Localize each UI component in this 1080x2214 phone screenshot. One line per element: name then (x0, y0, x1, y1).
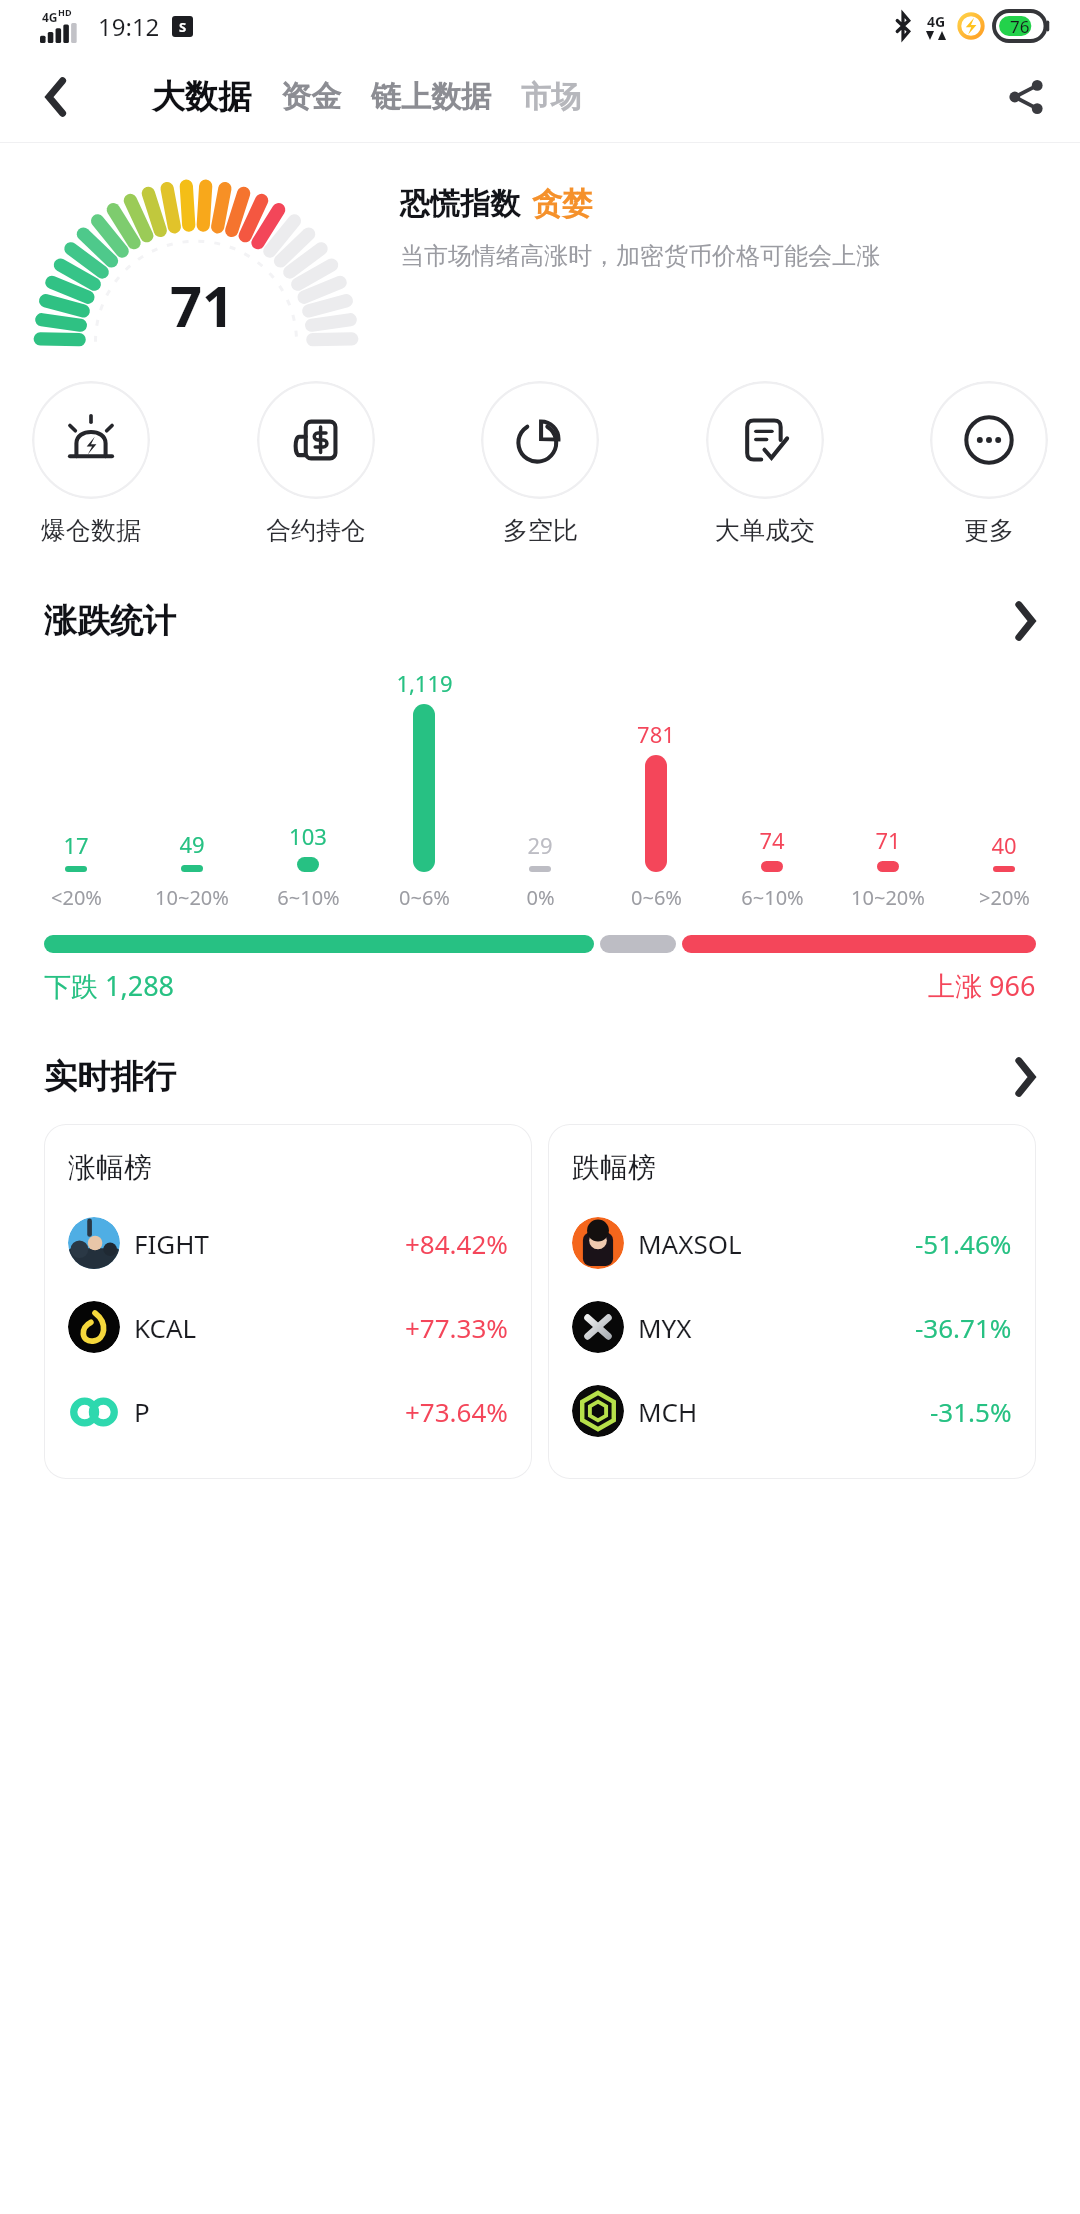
staticText: HD (58, 6, 72, 18)
button[interactable]: P (68, 1369, 508, 1453)
staticText: FIGHT (134, 1226, 209, 1261)
button[interactable]: 跌幅榜 (548, 1124, 1036, 1479)
staticText: 1,119 (396, 668, 453, 698)
button[interactable]: 市场 (515, 68, 587, 126)
staticText: 29 (527, 830, 553, 860)
staticText: 恐慌指数 (400, 185, 520, 223)
staticText: 跌幅榜 (572, 1150, 656, 1185)
staticText: 实时排行 (44, 1056, 176, 1098)
staticText: 0~6% (631, 884, 682, 911)
staticText: 爆仓数据 (41, 515, 141, 546)
staticText: 10~20% (851, 884, 925, 911)
staticText: <20% (51, 884, 102, 911)
staticText: 71 (875, 825, 901, 855)
button[interactable]: 大单成交 (706, 381, 824, 546)
button[interactable]: Back (26, 67, 86, 127)
staticText: 19:12 (98, 10, 160, 43)
staticText: 76 (1010, 15, 1030, 38)
staticText: 合约持仓 (266, 515, 366, 546)
button[interactable]: 链上数据 (365, 68, 497, 126)
staticText: +84.42% (405, 1226, 508, 1261)
staticText: 当市场情绪高涨时，加密货币价格可能会上涨 (400, 241, 880, 271)
staticText: -51.46% (915, 1226, 1012, 1261)
staticText: MCH (638, 1394, 698, 1429)
button[interactable]: 合约持仓 (257, 381, 375, 546)
button[interactable]: Share (994, 65, 1058, 129)
staticText: +77.33% (405, 1310, 508, 1345)
staticText: 10~20% (155, 884, 229, 911)
staticText: -36.71% (915, 1310, 1012, 1345)
button[interactable]: KCAL (68, 1285, 508, 1369)
staticText: MAXSOL (638, 1226, 742, 1261)
staticText: 多空比 (503, 515, 578, 546)
button[interactable]: 资金 (275, 68, 347, 126)
staticText: 0~6% (399, 884, 450, 911)
staticText: 781 (637, 719, 675, 749)
button[interactable]: MAXSOL (572, 1201, 1012, 1285)
button[interactable]: FIGHT (68, 1201, 508, 1285)
staticText: 71 (170, 267, 235, 343)
staticText: 下跌 1,288 (44, 967, 175, 1004)
staticText: MYX (638, 1310, 692, 1345)
staticText: 74 (759, 825, 785, 855)
staticText: P (134, 1394, 150, 1429)
staticText: 17 (63, 830, 89, 860)
button[interactable]: 涨幅榜 (44, 1124, 532, 1479)
staticText: 大单成交 (715, 515, 815, 546)
staticText: -31.5% (930, 1394, 1012, 1429)
staticText: KCAL (134, 1310, 197, 1345)
button[interactable]: MYX (572, 1285, 1012, 1369)
button[interactable]: 大数据 (146, 66, 257, 128)
staticText: 4G (42, 9, 58, 25)
button[interactable]: 爆仓数据 (32, 381, 150, 546)
button[interactable]: 多空比 (481, 381, 599, 546)
staticText: 资金 (281, 78, 341, 116)
button[interactable]: MCH (572, 1369, 1012, 1453)
staticText: 4G (927, 12, 946, 31)
staticText: >20% (979, 884, 1030, 911)
staticText: 更多 (964, 515, 1014, 546)
staticText: 涨幅榜 (68, 1150, 152, 1185)
staticText: 上涨 966 (928, 967, 1036, 1004)
staticText: 贪婪 (532, 185, 592, 223)
button[interactable]: 涨跌统计 (0, 590, 1080, 652)
staticText: 市场 (521, 78, 581, 116)
staticText: 大数据 (152, 76, 251, 118)
staticText: 0% (526, 884, 555, 911)
staticText: 49 (179, 829, 205, 859)
staticText: 40 (991, 830, 1017, 860)
button[interactable]: 实时排行 (0, 1046, 1080, 1108)
staticText: 链上数据 (371, 78, 491, 116)
staticText: 103 (289, 821, 327, 851)
staticText: +73.64% (405, 1394, 508, 1429)
staticText: 涨跌统计 (44, 600, 176, 642)
button[interactable]: 更多 (930, 381, 1048, 546)
staticText: S (179, 18, 187, 36)
staticText: 6~10% (277, 884, 340, 911)
staticText: 6~10% (741, 884, 804, 911)
